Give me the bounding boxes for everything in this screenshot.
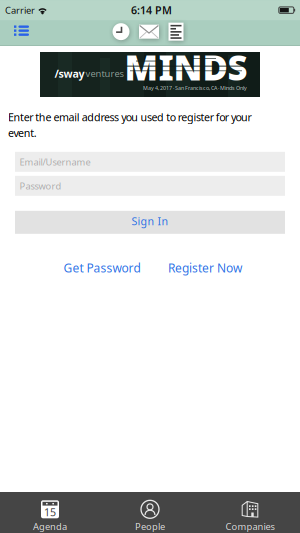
button[interactable]: Get Password	[50, 260, 153, 276]
button[interactable]: Register Now	[153, 260, 256, 276]
staticText: Carrier	[5, 4, 35, 16]
button[interactable]: Sign In	[15, 211, 285, 234]
staticText: event.	[8, 126, 37, 140]
staticText: Password	[19, 180, 61, 192]
staticText: Companies	[225, 520, 274, 533]
staticText: 15	[44, 505, 56, 519]
staticText: Get Password	[63, 260, 140, 276]
staticText: Agenda	[33, 520, 67, 533]
button[interactable]	[139, 25, 159, 39]
staticText: /sway	[54, 66, 84, 81]
staticText: ventures	[85, 67, 123, 80]
button[interactable]: People	[100, 492, 200, 533]
button[interactable]	[0, 27, 29, 38]
button[interactable]	[168, 23, 183, 41]
button[interactable]: Companies	[200, 492, 300, 533]
staticText: People	[135, 520, 165, 533]
staticText: MINDS	[124, 44, 247, 90]
button[interactable]: Email/Username	[15, 152, 285, 172]
staticText: Register Now	[168, 260, 242, 276]
button[interactable]: 15	[0, 492, 100, 533]
staticText: May 4, 2017 · San Francisco, CA · Minds …	[143, 84, 247, 92]
staticText: Sign In	[131, 214, 168, 228]
button[interactable]: Password	[15, 176, 285, 196]
staticText: Enter the email address you used to regi…	[8, 110, 252, 124]
staticText: Email/Username	[19, 156, 90, 168]
staticText: 6:14 PM	[131, 3, 172, 17]
button[interactable]	[112, 23, 129, 40]
